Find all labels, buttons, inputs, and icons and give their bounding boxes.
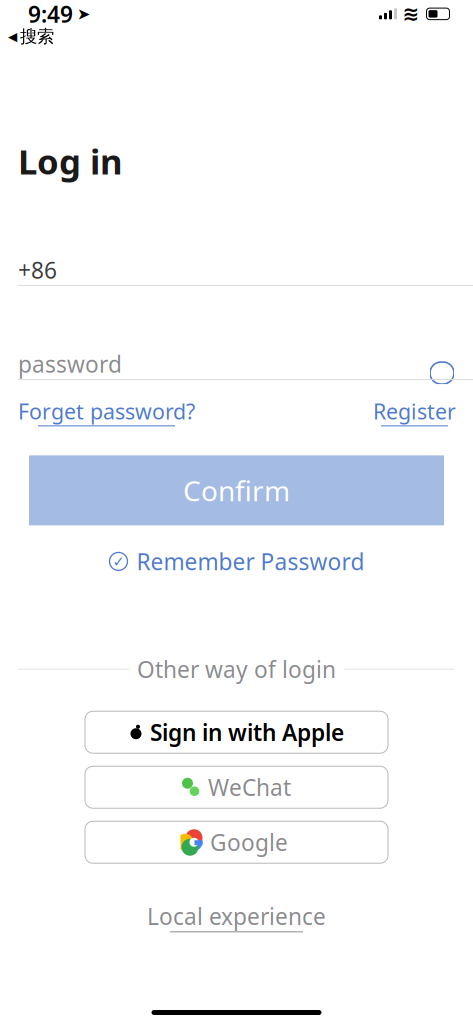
staticText: 搜索	[20, 26, 54, 47]
button[interactable]: Confirm	[29, 455, 444, 525]
staticText: Log in	[18, 138, 123, 184]
button[interactable]: ✓	[108, 546, 364, 576]
staticText: Remember Password	[136, 546, 364, 576]
staticText: 9:49	[28, 0, 73, 29]
staticText: ✓	[112, 553, 124, 570]
staticText: Forget password?	[18, 397, 195, 425]
button[interactable]: WeChat	[85, 766, 388, 808]
staticText: Confirm	[183, 472, 290, 509]
staticText: ◀	[8, 30, 17, 43]
staticText: Other way of login	[137, 654, 336, 684]
button[interactable]: Google	[85, 821, 388, 863]
staticText: Register	[373, 397, 456, 425]
staticText: ➤	[77, 5, 90, 23]
staticText: Local experience	[147, 901, 326, 931]
button[interactable]: Local experience	[147, 901, 326, 932]
button[interactable]: Sign in with Apple	[85, 711, 388, 753]
staticText: password	[18, 349, 122, 379]
button[interactable]: Show password	[429, 356, 473, 372]
staticText: +86	[18, 255, 57, 285]
staticText: Sign in with Apple	[150, 717, 344, 747]
button[interactable]: Forget password?	[18, 397, 195, 426]
staticText: Google	[210, 827, 288, 857]
staticText: WeChat	[208, 772, 291, 802]
button[interactable]: Register	[373, 397, 456, 426]
staticText: ≋	[402, 2, 419, 25]
